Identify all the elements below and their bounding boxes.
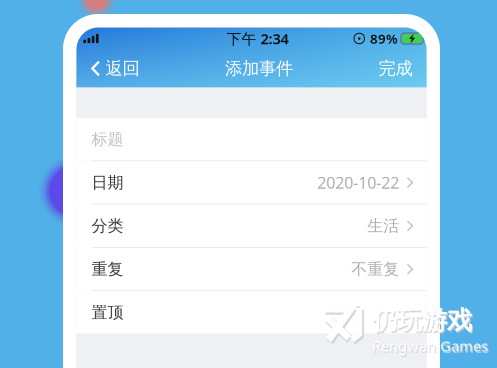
staticText: 添加事件 [225, 58, 293, 79]
button[interactable]: 完成 [370, 52, 412, 85]
button[interactable]: 日期 [76, 161, 426, 204]
staticText: 89% [370, 30, 398, 47]
staticText: 下午 2:34 [226, 29, 288, 48]
staticText: 2020-10-22 [317, 172, 399, 193]
button[interactable]: 分类 [76, 205, 426, 247]
staticText: 日期 [91, 173, 123, 192]
staticText: 分类 [91, 216, 123, 236]
button[interactable]: 标题 [76, 118, 426, 160]
staticText: 不重复 [351, 259, 399, 279]
staticText: 仍玩游戏 [373, 306, 473, 338]
staticText: 标题 [91, 129, 123, 149]
staticText: 仍玩游戏 [372, 305, 472, 336]
staticText: 返回 [105, 58, 139, 79]
button[interactable]: 重复 [76, 248, 426, 290]
staticText: 重复 [91, 259, 123, 279]
staticText: Rengwan Games [372, 336, 488, 356]
staticText: 生活 [367, 216, 399, 236]
staticText: 完成 [378, 58, 412, 79]
button[interactable]: 返回 [90, 52, 147, 85]
staticText: 置顶 [91, 303, 123, 322]
button[interactable]: 置顶 [76, 291, 426, 334]
staticText: Rengwan Games [373, 338, 489, 357]
